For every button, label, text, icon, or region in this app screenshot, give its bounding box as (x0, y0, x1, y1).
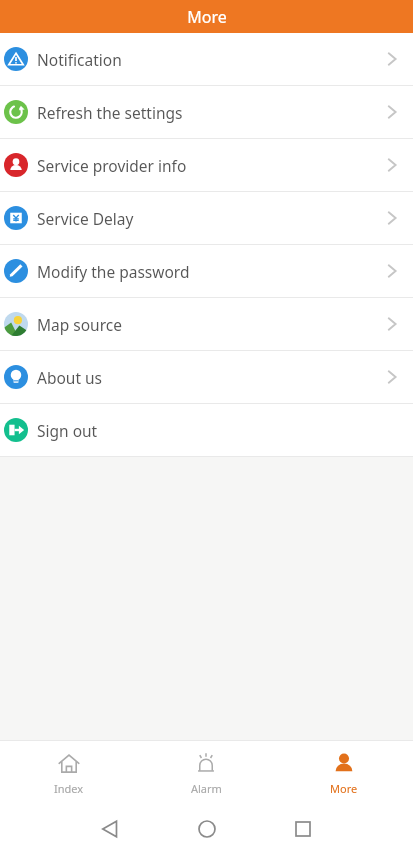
staticText: More (187, 6, 227, 28)
button[interactable]: Service provider info (0, 139, 413, 192)
button[interactable]: Notification (0, 33, 413, 86)
button[interactable]: About us (0, 351, 413, 404)
button[interactable]: Sign out (0, 404, 413, 457)
staticText: Sign out (37, 420, 98, 441)
staticText: Service Delay (37, 208, 134, 229)
staticText: Modify the password (37, 261, 190, 282)
button[interactable]: Home (185, 807, 229, 851)
staticText: Refresh the settings (37, 102, 183, 123)
staticText: Alarm (191, 781, 222, 796)
button[interactable]: Recent apps (281, 807, 325, 851)
staticText: Map source (37, 314, 122, 335)
button[interactable]: Back (88, 807, 132, 851)
button[interactable]: Index (0, 741, 137, 805)
button[interactable]: Modify the password (0, 245, 413, 298)
button[interactable]: Service Delay (0, 192, 413, 245)
staticText: Index (54, 781, 84, 796)
staticText: Notification (37, 49, 122, 70)
button[interactable]: More (275, 741, 413, 805)
staticText: More (330, 781, 358, 796)
staticText: About us (37, 367, 103, 388)
button[interactable]: Refresh the settings (0, 86, 413, 139)
button[interactable]: Alarm (137, 741, 275, 805)
staticText: Service provider info (37, 155, 187, 176)
button[interactable]: Map source (0, 298, 413, 351)
